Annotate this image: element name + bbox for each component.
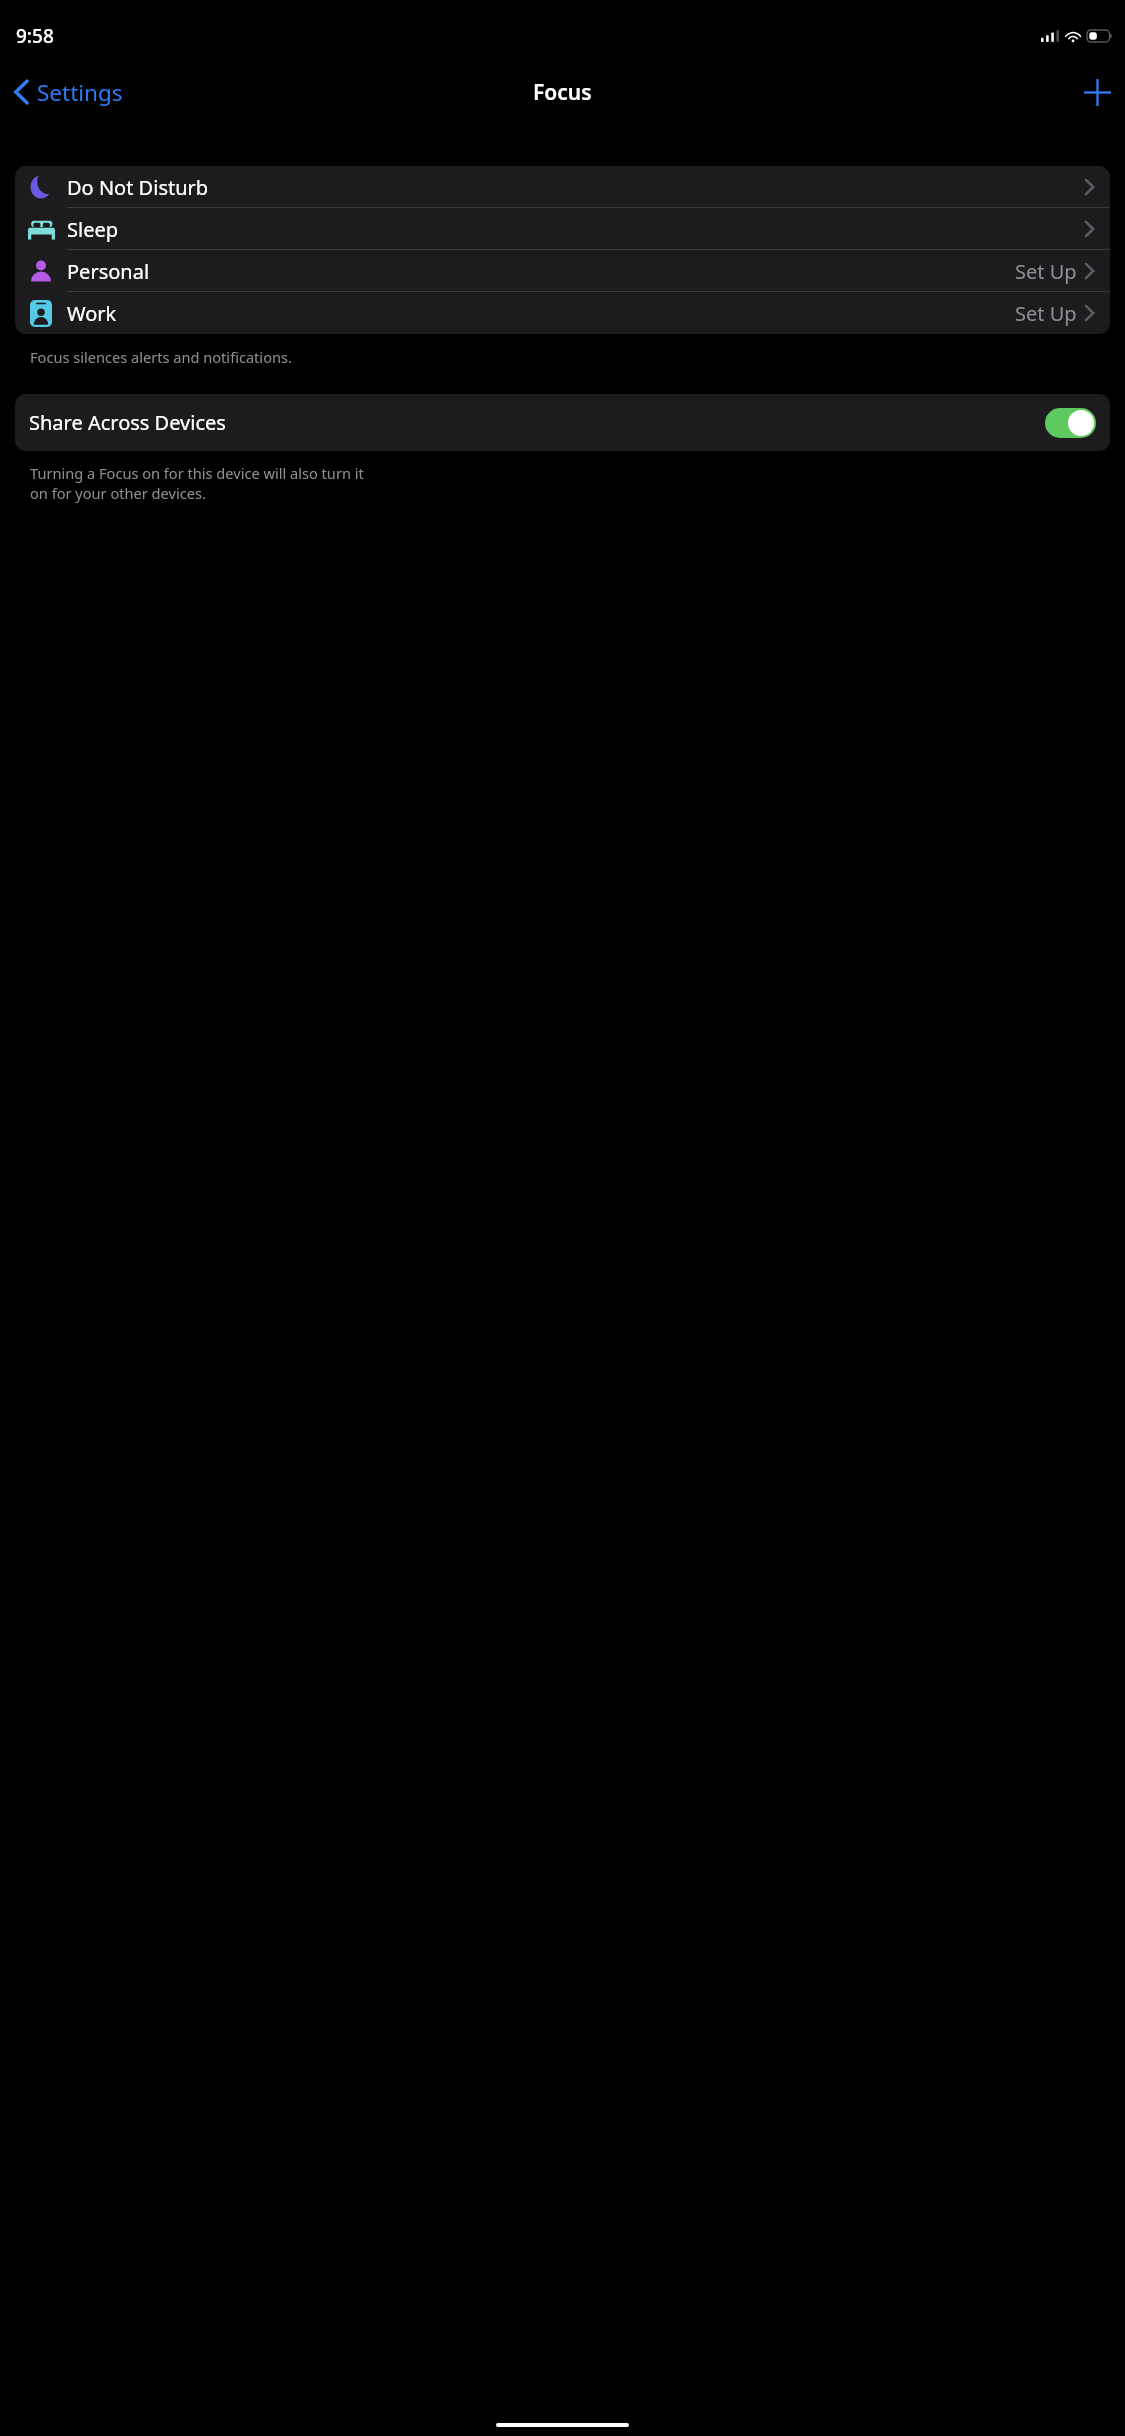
- staticText: Turning a Focus on for this device will …: [30, 463, 364, 503]
- button[interactable]: Do Not Disturb: [15, 166, 1110, 208]
- button[interactable]: Add Focus: [1069, 64, 1125, 120]
- staticText: Set Up: [1015, 300, 1077, 327]
- staticText: 9:58: [16, 23, 54, 49]
- button[interactable]: Share Across Devices: [15, 394, 1110, 451]
- staticText: Settings: [37, 77, 123, 108]
- staticText: Sleep: [67, 216, 118, 243]
- staticText: Do Not Disturb: [67, 174, 209, 201]
- staticText: Share Across Devices: [29, 409, 226, 436]
- staticText: Focus silences alerts and notifications.: [30, 347, 292, 367]
- staticText: Focus: [533, 78, 592, 107]
- button[interactable]: Personal: [15, 250, 1110, 292]
- staticText: Personal: [67, 258, 150, 285]
- button[interactable]: Sleep: [15, 208, 1110, 250]
- button[interactable]: Work: [15, 292, 1110, 334]
- button[interactable]: Settings: [0, 64, 135, 120]
- staticText: Set Up: [1015, 258, 1077, 285]
- staticText: Work: [67, 300, 117, 327]
